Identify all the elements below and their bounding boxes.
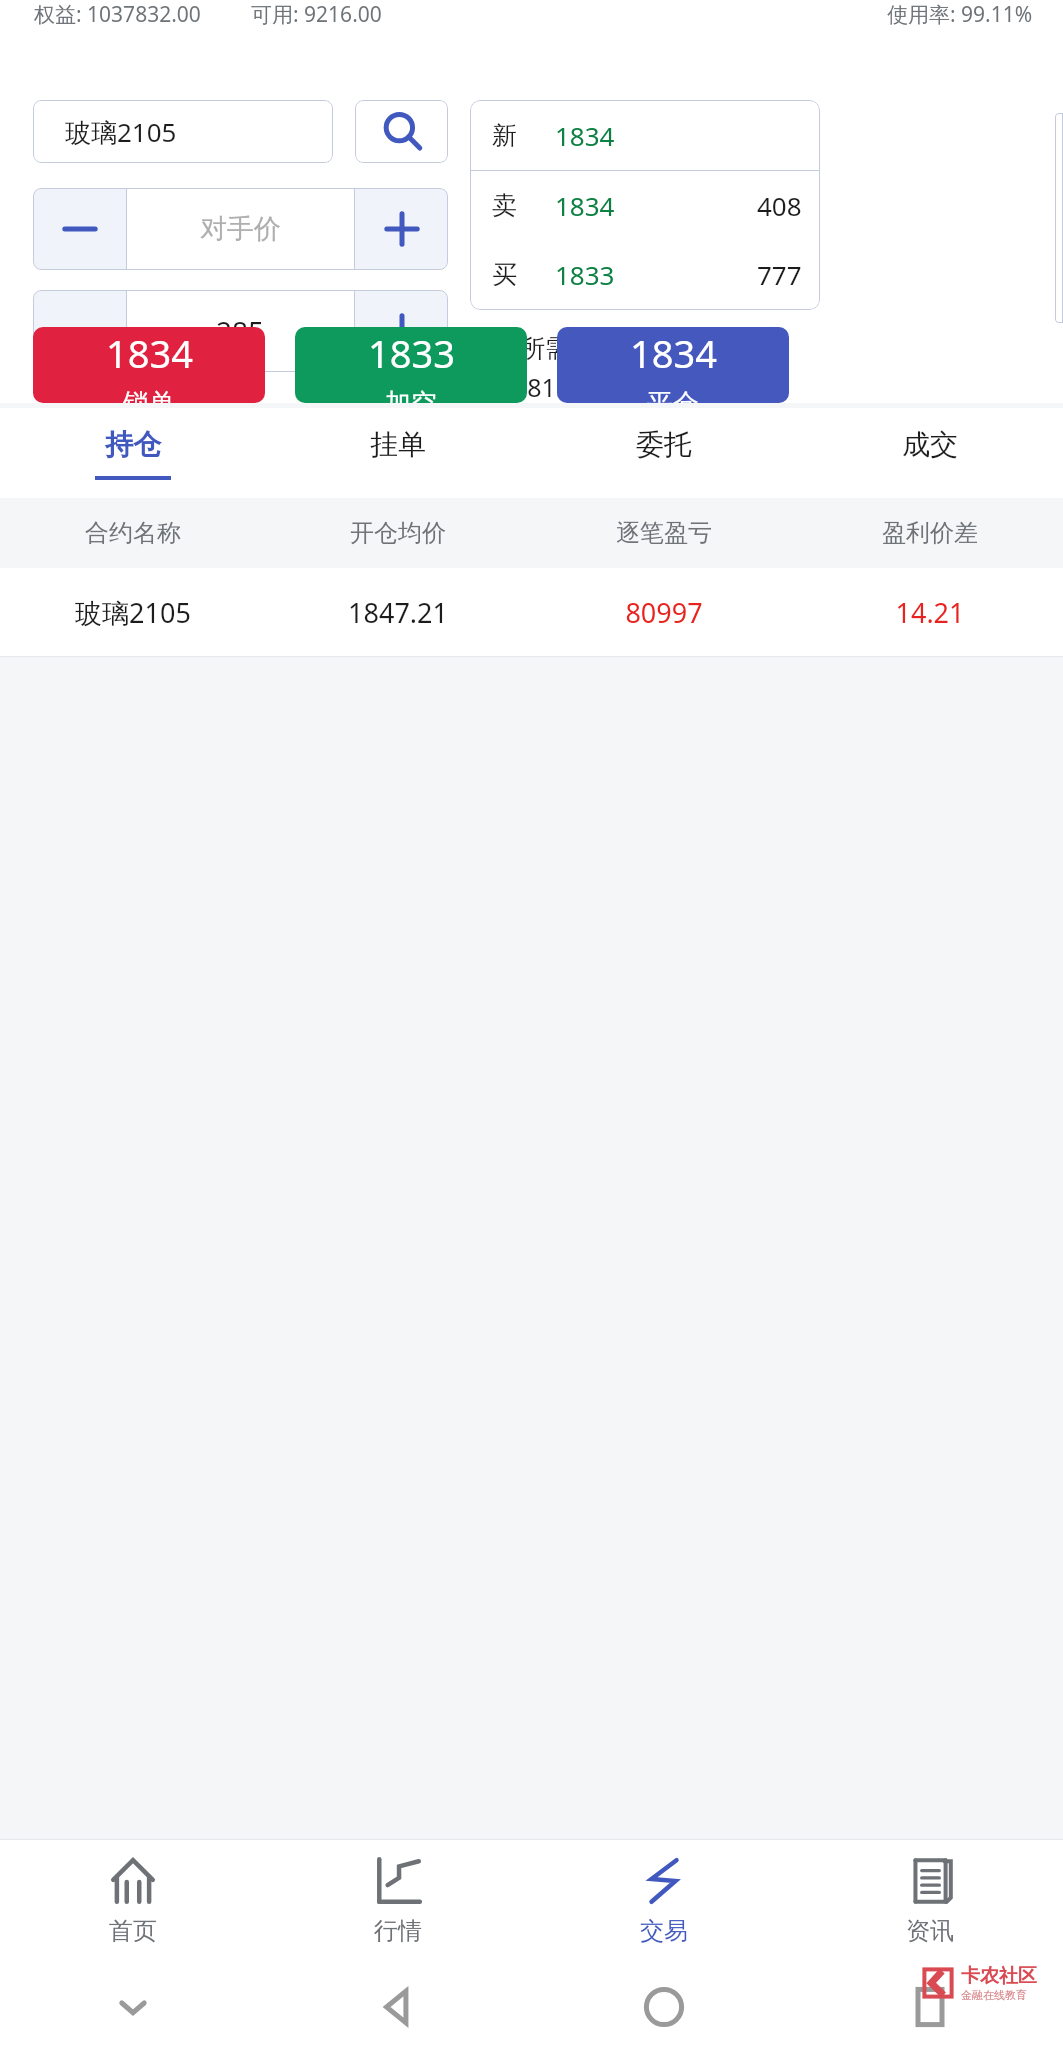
staticText: 285 bbox=[216, 312, 265, 350]
staticText: 卡农社区 bbox=[961, 1964, 1037, 1988]
staticText: 1834 bbox=[555, 118, 615, 153]
button[interactable]: 减少 bbox=[33, 290, 126, 372]
staticText: 成交 bbox=[902, 427, 958, 462]
staticText: 交易 bbox=[640, 1916, 688, 1946]
staticText: 平仓 bbox=[647, 387, 699, 403]
staticText: 资讯 bbox=[906, 1916, 954, 1946]
staticText: 1847.21 bbox=[348, 594, 448, 631]
staticText: 1833 bbox=[555, 257, 615, 292]
button[interactable]: 持仓 bbox=[0, 408, 265, 498]
staticText: 1834 bbox=[106, 327, 193, 379]
button[interactable]: 玻璃2105 bbox=[0, 568, 1063, 656]
button[interactable]: 成交 bbox=[797, 408, 1063, 498]
staticText: 玻璃2105 bbox=[75, 594, 191, 631]
staticText: 持仓 bbox=[105, 427, 161, 462]
staticText: 逐笔盈亏 bbox=[616, 518, 712, 548]
button[interactable]: 收起 bbox=[0, 1960, 265, 2053]
staticText: 14.21 bbox=[895, 594, 965, 631]
staticText: 合约名称 bbox=[85, 518, 181, 548]
staticText: 1833 bbox=[368, 327, 455, 379]
staticText: 80997 bbox=[625, 594, 703, 631]
staticText: 开仓所需保证金约: bbox=[470, 330, 677, 364]
button[interactable]: 行情 bbox=[265, 1840, 531, 1960]
button[interactable]: 返回 bbox=[265, 1960, 531, 2053]
button[interactable]: 交易 bbox=[531, 1840, 797, 1960]
button[interactable]: 资讯 bbox=[797, 1840, 1063, 1960]
button[interactable]: 增加 bbox=[355, 188, 448, 270]
staticText: 对手价 bbox=[200, 212, 281, 246]
staticText: 942381.00 bbox=[470, 370, 592, 403]
staticText: 1834 bbox=[555, 188, 615, 223]
button[interactable]: 最近任务 bbox=[797, 1960, 1063, 2053]
staticText: 1834 bbox=[630, 327, 717, 379]
button[interactable]: 玻璃2105 bbox=[33, 100, 333, 163]
button[interactable]: 1834 bbox=[33, 327, 265, 403]
staticText: 盈利价差 bbox=[882, 518, 978, 548]
button[interactable]: 新 bbox=[470, 100, 820, 310]
button[interactable]: 委托 bbox=[531, 408, 797, 498]
staticText: 行情 bbox=[374, 1916, 422, 1946]
button[interactable]: 对手价 bbox=[127, 188, 354, 270]
staticText: 卖 bbox=[492, 190, 517, 221]
staticText: 买 bbox=[492, 259, 517, 290]
staticText: 使用率: 99.11% bbox=[887, 0, 1033, 29]
staticText: 权益: 1037832.00 bbox=[34, 0, 201, 29]
button[interactable]: 1834 bbox=[557, 327, 789, 403]
button[interactable]: 搜索 bbox=[355, 100, 448, 163]
staticText: 加空 bbox=[385, 387, 437, 403]
button[interactable]: 减少 bbox=[33, 188, 126, 270]
staticText: 挂单 bbox=[370, 427, 426, 462]
staticText: 新 bbox=[492, 120, 517, 151]
staticText: 首页 bbox=[109, 1916, 157, 1946]
button[interactable]: 挂单 bbox=[265, 408, 531, 498]
button[interactable]: 首页 bbox=[0, 1840, 265, 1960]
button[interactable]: 增加 bbox=[355, 290, 448, 372]
button[interactable]: 主屏幕 bbox=[531, 1960, 797, 2053]
staticText: 777 bbox=[757, 257, 802, 292]
staticText: 开仓均价 bbox=[350, 518, 446, 548]
staticText: 408 bbox=[757, 188, 802, 223]
button[interactable]: 1833 bbox=[295, 327, 527, 403]
button[interactable]: 285 bbox=[127, 290, 354, 372]
staticText: 委托 bbox=[636, 427, 692, 462]
staticText: 玻璃2105 bbox=[65, 114, 177, 150]
staticText: 锁单 bbox=[123, 387, 175, 403]
staticText: 可用: 9216.00 bbox=[251, 0, 382, 29]
staticText: 金融在线教育 bbox=[961, 1988, 1027, 2002]
